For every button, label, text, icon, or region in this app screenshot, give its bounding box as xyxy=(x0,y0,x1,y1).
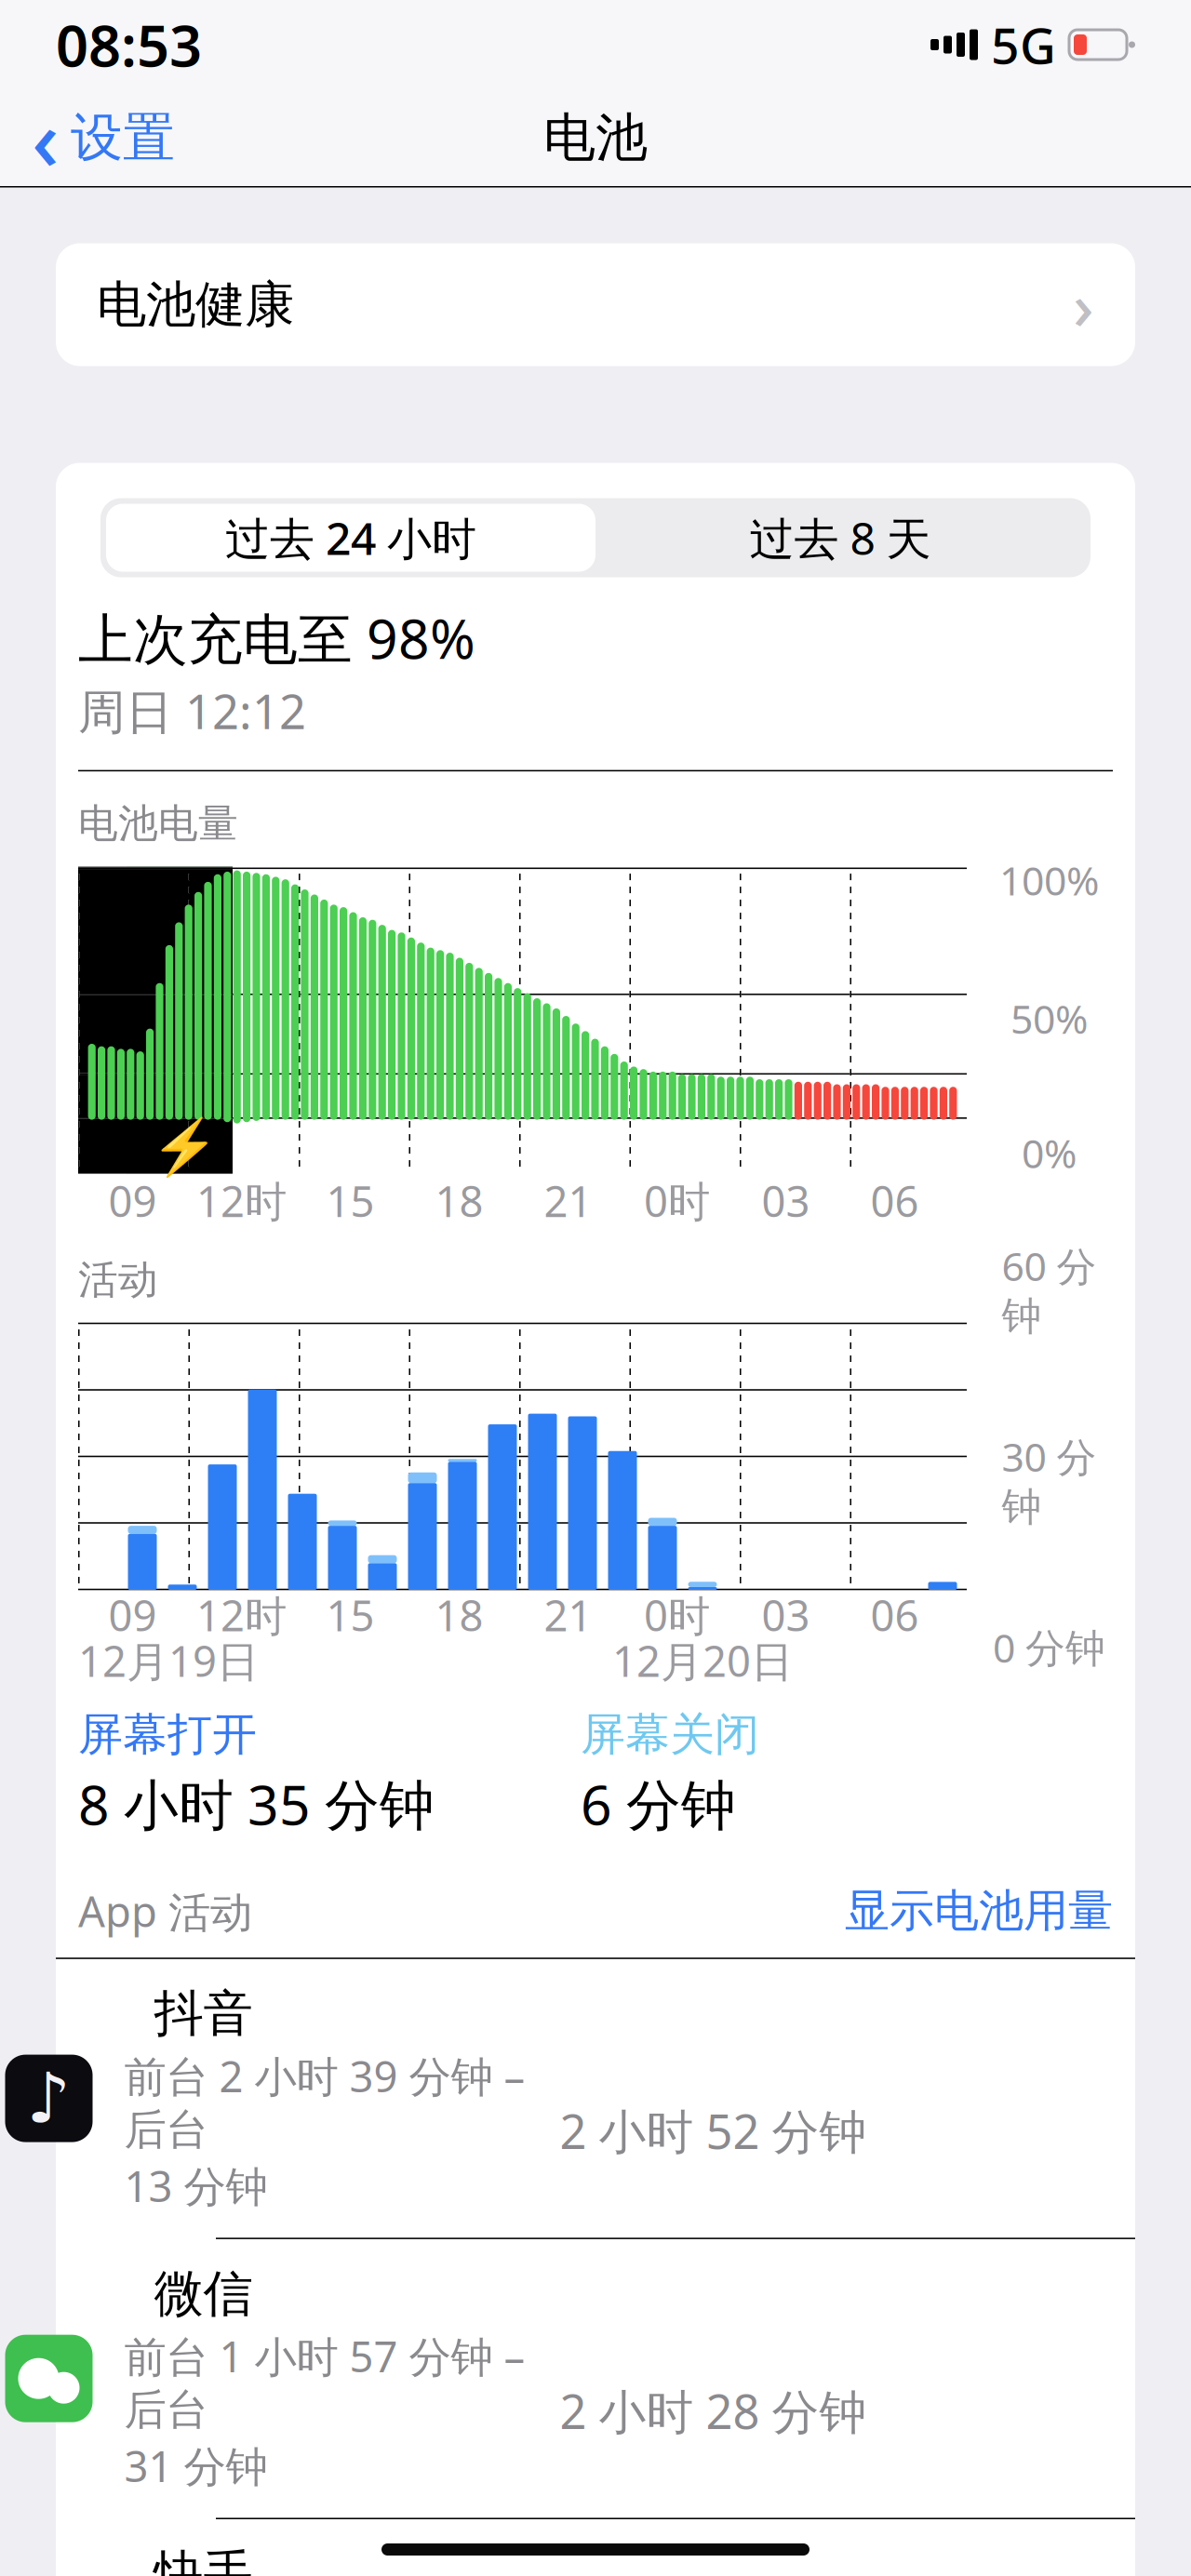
staticText: ⚡ xyxy=(151,1116,219,1178)
button[interactable]: 快手 xyxy=(56,2519,1135,2576)
staticText: 显示电池用量 xyxy=(845,1883,1113,1938)
button[interactable]: 微信 xyxy=(56,2239,1135,2518)
staticText: 5G xyxy=(991,12,1056,78)
button[interactable]: 过去 8 天 xyxy=(595,504,1085,572)
staticText: 电池 xyxy=(543,106,648,170)
staticText: 12时 xyxy=(196,1587,287,1643)
staticText: 快手 xyxy=(154,2543,253,2576)
staticText: 12月20日 xyxy=(612,1633,793,1689)
staticText: 周日 12:12 xyxy=(78,679,306,742)
staticText: 电池电量 xyxy=(78,799,238,848)
staticText: 0时 xyxy=(644,1587,710,1643)
staticText: 100% xyxy=(999,854,1099,906)
staticText: 过去 8 天 xyxy=(749,508,931,567)
staticText: ♪ xyxy=(27,2059,71,2138)
staticText: 活动 xyxy=(78,1256,158,1304)
staticText: 18 xyxy=(435,1173,483,1229)
staticText: ‹ xyxy=(32,82,60,194)
staticText: 21 xyxy=(544,1587,592,1643)
staticText: 屏幕打开 xyxy=(78,1707,257,1762)
staticText: 设置 xyxy=(71,106,175,170)
button[interactable]: 电池健康 xyxy=(56,243,1135,366)
staticText: 2 小时 52 分钟 xyxy=(560,2099,867,2162)
staticText: 8 小时 35 分钟 xyxy=(78,1768,435,1840)
staticText: 0 分钟 xyxy=(993,1621,1105,1674)
staticText: 2 小时 28 分钟 xyxy=(560,2380,867,2442)
staticText: 03 xyxy=(762,1587,810,1643)
button[interactable]: 过去 24 小时 xyxy=(106,504,595,572)
staticText: 0时 xyxy=(644,1173,710,1229)
staticText: App 活动 xyxy=(78,1883,252,1939)
staticText: 电池健康 xyxy=(97,274,294,335)
staticText: 21 xyxy=(544,1173,592,1229)
staticText: 03 xyxy=(762,1173,810,1229)
staticText: 50% xyxy=(1010,992,1088,1045)
button[interactable]: 显示电池用量 xyxy=(845,1883,1113,1938)
staticText: 屏幕关闭 xyxy=(581,1707,759,1762)
staticText: 6 分钟 xyxy=(581,1768,736,1840)
button[interactable]: ‹ xyxy=(0,71,175,205)
staticText: 12月19日 xyxy=(78,1633,259,1689)
staticText: 15 xyxy=(326,1587,375,1643)
staticText: 过去 24 小时 xyxy=(225,508,476,567)
staticText: 13 分钟 xyxy=(124,2158,268,2214)
staticText: 30 分钟 xyxy=(1002,1430,1097,1532)
staticText: 60 分钟 xyxy=(1002,1239,1097,1341)
staticText: 18 xyxy=(435,1587,483,1643)
staticText: 06 xyxy=(870,1587,919,1643)
staticText: 15 xyxy=(326,1173,375,1229)
staticText: › xyxy=(1073,262,1094,348)
staticText: 08:53 xyxy=(56,7,202,83)
staticText: 12时 xyxy=(196,1173,287,1229)
staticText: 09 xyxy=(108,1173,157,1229)
staticText: 上次充电至 98% xyxy=(78,601,475,674)
staticText: 前台 1 小时 57 分钟 – 后台 xyxy=(124,2328,525,2436)
staticText: 09 xyxy=(108,1587,157,1643)
staticText: 0% xyxy=(1022,1126,1077,1179)
staticText: 抖音 xyxy=(154,1983,253,2044)
staticText: 前台 2 小时 39 分钟 – 后台 xyxy=(124,2048,525,2156)
staticText: 31 分钟 xyxy=(124,2438,268,2494)
staticText: 微信 xyxy=(154,2263,253,2324)
staticText: 06 xyxy=(870,1173,919,1229)
button[interactable]: ♪ xyxy=(56,1959,1135,2238)
